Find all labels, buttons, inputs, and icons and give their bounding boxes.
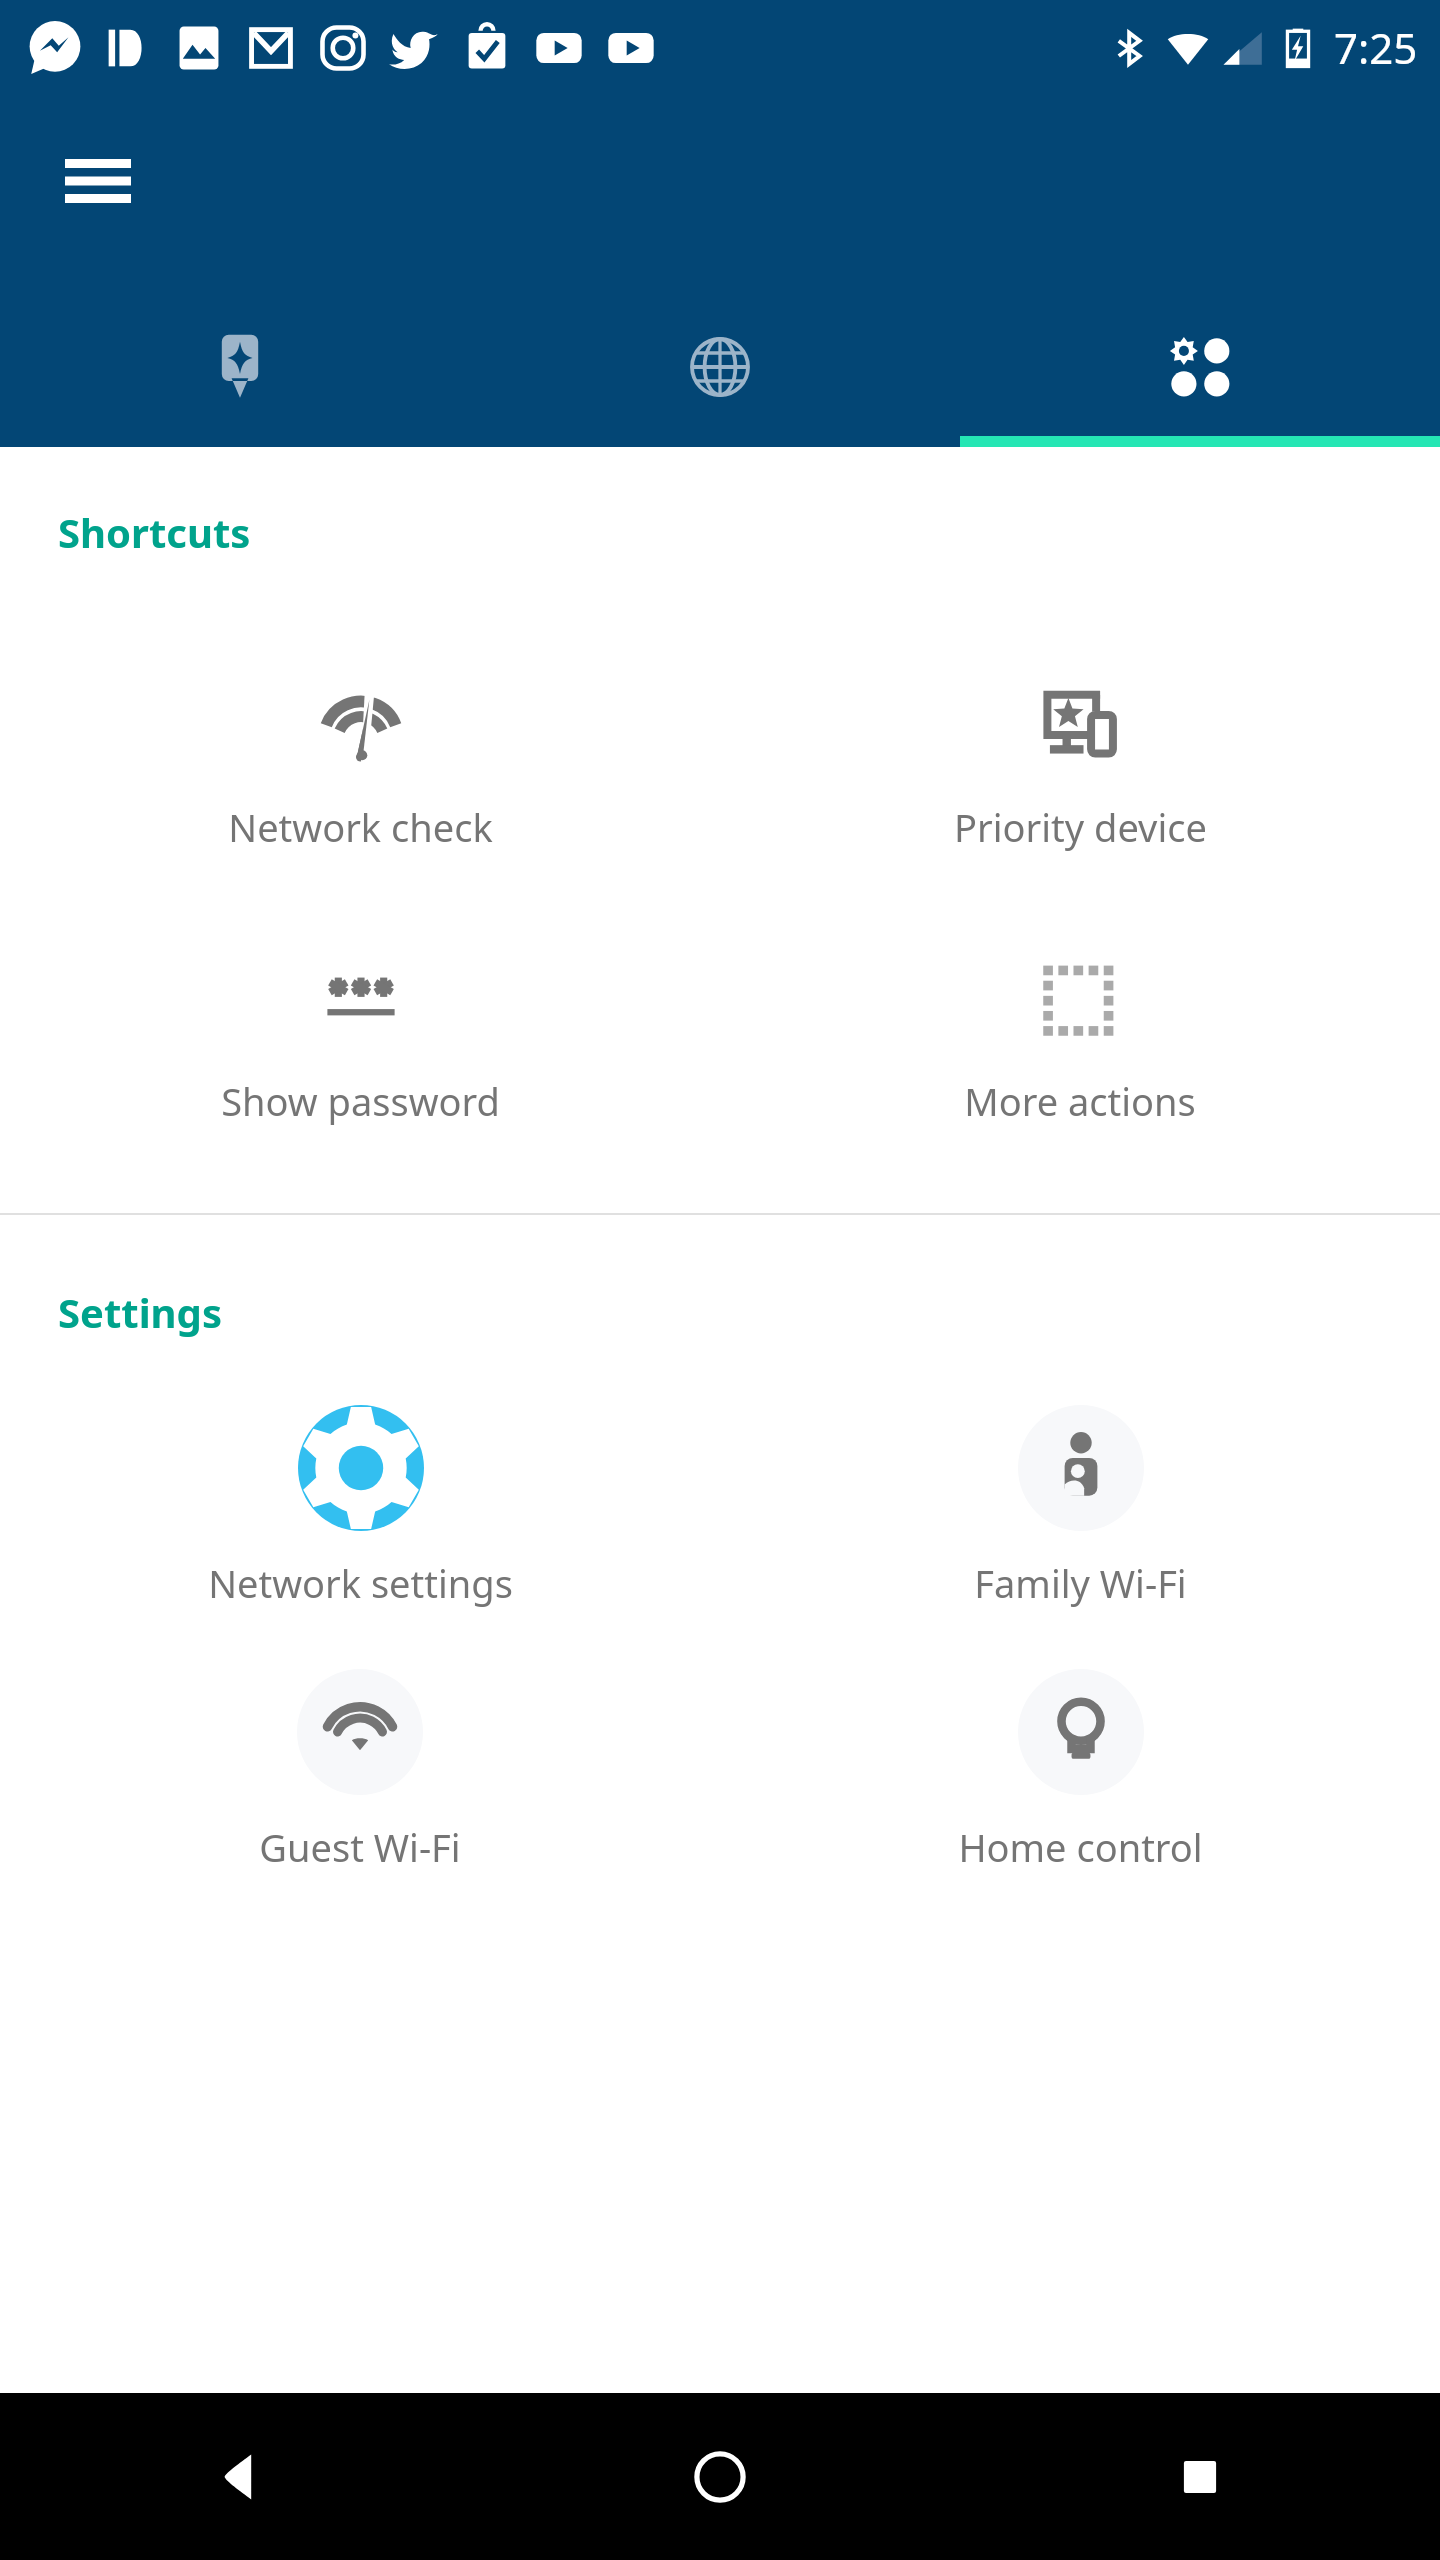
button[interactable]: Network [480,287,960,447]
button[interactable]: Settings tab [960,287,1440,447]
staticText: More actions [964,1075,1196,1127]
staticText: Guest Wi-Fi [259,1821,461,1873]
button[interactable]: Home [480,2393,960,2560]
button[interactable]: Priority device [934,675,1227,861]
button[interactable]: Network settings [188,1397,533,1617]
button[interactable]: Show password [201,949,520,1135]
button[interactable]: More actions [944,949,1216,1135]
button[interactable]: Recents [960,2393,1440,2560]
button[interactable]: Family Wi-Fi [954,1397,1207,1617]
button[interactable]: Home control [938,1661,1223,1881]
staticText: Shortcuts [58,505,251,559]
staticText: Network check [228,801,493,853]
button[interactable]: Assistant [0,287,480,447]
staticText: Show password [221,1075,500,1127]
button[interactable]: Guest Wi-Fi [239,1661,481,1881]
button[interactable]: Back [0,2393,480,2560]
staticText: Home control [958,1821,1203,1873]
staticText: Priority device [954,801,1207,853]
button[interactable]: Network check [208,675,513,861]
button[interactable]: Menu [50,140,146,222]
staticText: 7:25 [1334,19,1418,76]
staticText: Settings [58,1285,222,1339]
staticText: Family Wi-Fi [974,1557,1187,1609]
staticText: Network settings [208,1557,513,1609]
